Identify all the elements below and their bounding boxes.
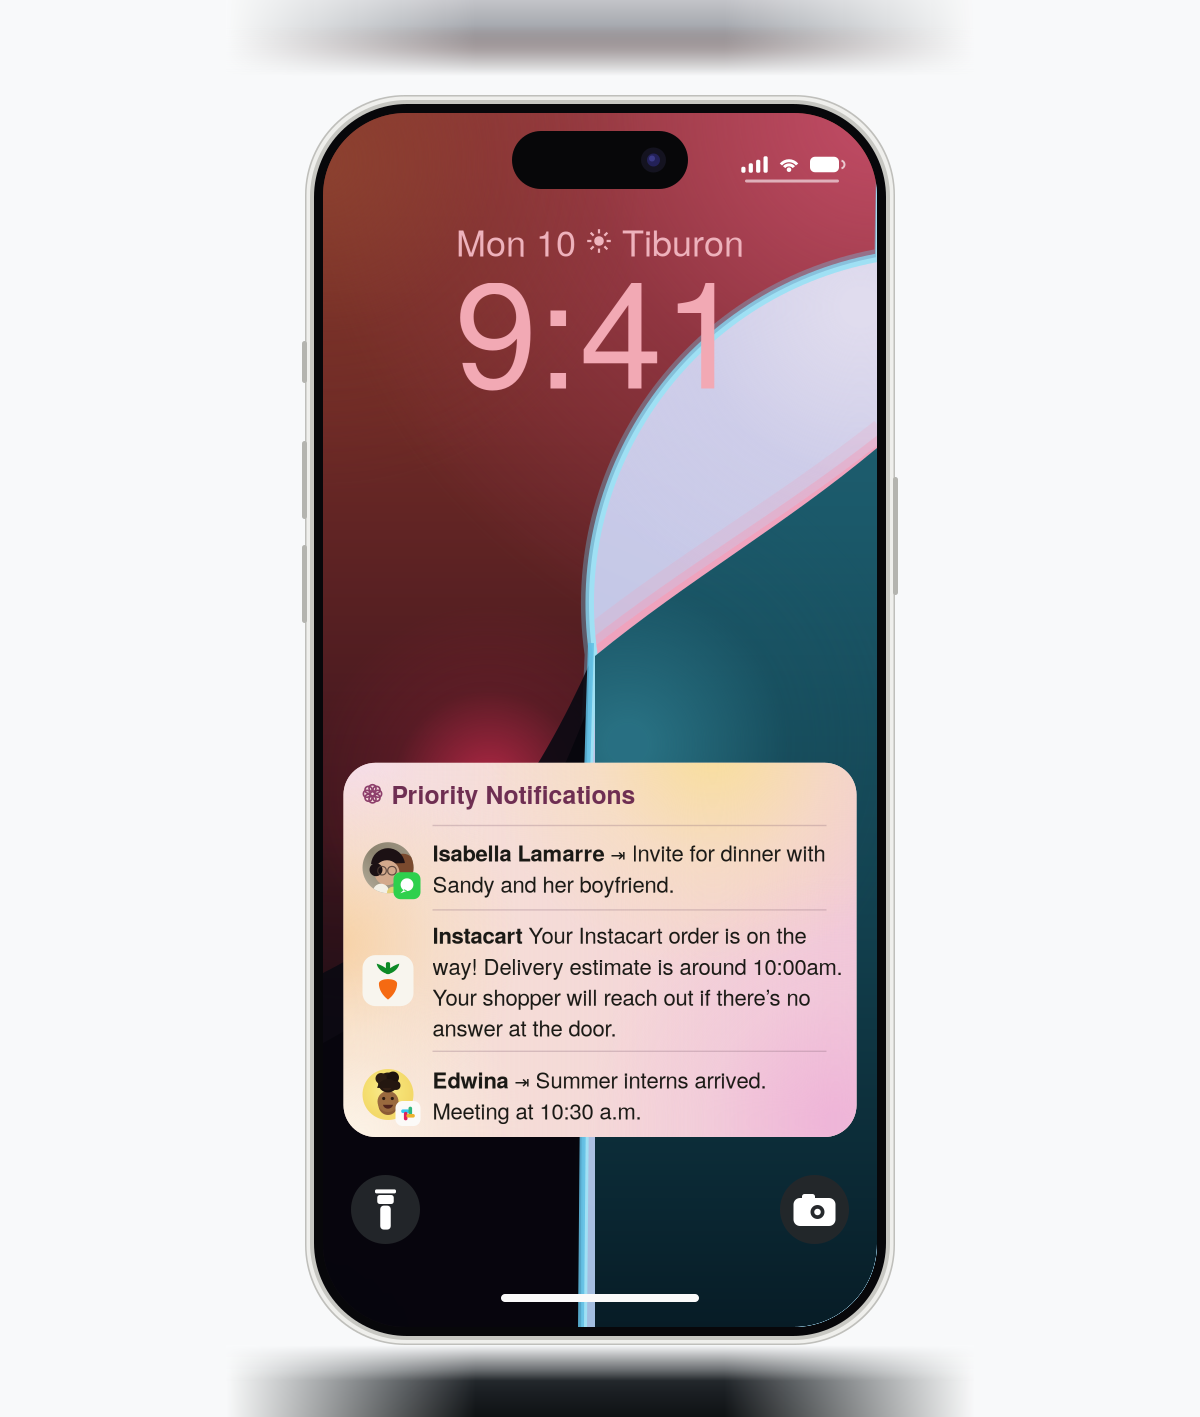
staticText: 9:41 — [454, 217, 745, 431]
staticText: Isabella Lamarre ⇥ Invite for dinner wit… — [432, 837, 825, 899]
button[interactable]: Instacart Your Instacart order is on the… — [343, 911, 856, 1051]
button[interactable]: Camera — [780, 1175, 849, 1244]
button[interactable]: Flashlight — [351, 1175, 420, 1244]
button[interactable]: Edwina ⇥ Summer interns arrived. Meeting… — [343, 1052, 856, 1137]
button[interactable]: before finalizing restaurant reservation… — [383, 1047, 817, 1107]
staticText: before finalizing restaurant reservation… — [450, 1045, 705, 1108]
button[interactable]: Isabella Lamarre ⇥ Invite for dinner wit… — [343, 826, 856, 909]
staticText: Edwina ⇥ Summer interns arrived. Meeting… — [432, 1063, 766, 1125]
staticText: Mon 10 — [456, 215, 576, 267]
staticText: Instacart Your Instacart order is on the… — [432, 919, 842, 1042]
staticText: Tiburon — [622, 215, 744, 267]
staticText: Priority Notifications — [391, 776, 635, 811]
